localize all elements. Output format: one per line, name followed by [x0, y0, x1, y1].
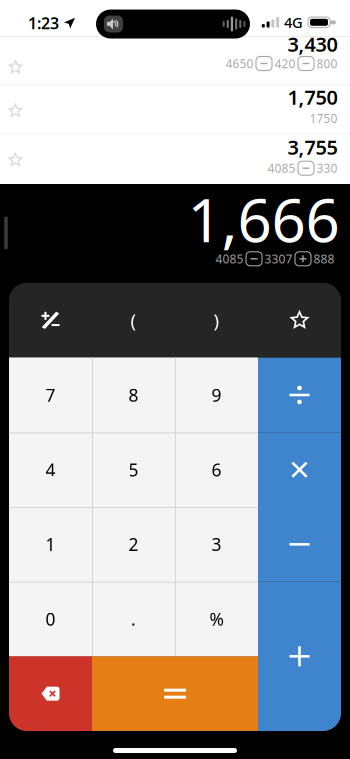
- staticText: 1750: [309, 110, 337, 126]
- staticText: 1:23: [28, 12, 59, 34]
- staticText: 7: [45, 383, 55, 406]
- staticText: 4085: [215, 251, 243, 267]
- button[interactable]: 1,750: [0, 85, 350, 133]
- button[interactable]: Plus minus: [9, 283, 92, 358]
- staticText: 8: [128, 383, 138, 406]
- staticText: 6: [211, 458, 221, 481]
- button[interactable]: 3,430: [0, 37, 350, 85]
- staticText: 9: [211, 383, 221, 406]
- button[interactable]: Equals: [92, 656, 258, 731]
- button[interactable]: ): [175, 283, 258, 358]
- staticText: 800: [316, 55, 337, 71]
- staticText: 2: [128, 533, 138, 556]
- button[interactable]: 4: [9, 432, 92, 507]
- staticText: 3: [211, 533, 221, 556]
- staticText: 3,430: [287, 31, 337, 57]
- staticText: %: [209, 607, 223, 630]
- button[interactable]: Multiply: [258, 432, 341, 507]
- button[interactable]: 5: [92, 432, 175, 507]
- staticText: 4650: [225, 55, 253, 71]
- staticText: 4G: [284, 13, 303, 32]
- button[interactable]: 9: [175, 358, 258, 432]
- button[interactable]: %: [175, 582, 258, 656]
- staticText: 3,755: [287, 134, 337, 160]
- staticText: ): [213, 308, 219, 333]
- staticText: 4085: [267, 160, 295, 176]
- staticText: 1: [45, 533, 55, 556]
- staticText: 1,750: [287, 84, 337, 110]
- staticText: 1,666: [187, 179, 339, 259]
- button[interactable]: Delete: [9, 656, 92, 731]
- staticText: 420: [274, 55, 295, 71]
- staticText: 4: [45, 458, 55, 481]
- staticText: 330: [316, 160, 337, 176]
- button[interactable]: 3,755: [0, 134, 350, 183]
- button[interactable]: 8: [92, 358, 175, 432]
- staticText: 3307: [264, 251, 292, 267]
- staticText: 888: [313, 251, 334, 267]
- button[interactable]: 6: [175, 432, 258, 507]
- button[interactable]: Plus: [258, 582, 341, 731]
- button[interactable]: Minus: [258, 507, 341, 582]
- button[interactable]: 3: [175, 507, 258, 582]
- button[interactable]: (: [92, 283, 175, 358]
- button[interactable]: Divide: [258, 358, 341, 432]
- staticText: .: [131, 607, 136, 630]
- button[interactable]: Favourite: [258, 283, 341, 358]
- button[interactable]: 1: [9, 507, 92, 582]
- button[interactable]: .: [92, 582, 175, 656]
- staticText: 0: [45, 607, 55, 630]
- staticText: 5: [128, 458, 138, 481]
- button[interactable]: 0: [9, 582, 92, 656]
- button[interactable]: 2: [92, 507, 175, 582]
- staticText: (: [130, 308, 136, 333]
- button[interactable]: 7: [9, 358, 92, 432]
